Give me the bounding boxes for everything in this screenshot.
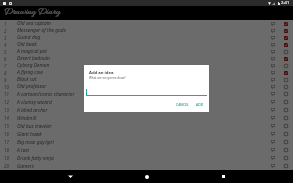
button[interactable]: 1 [0, 20, 293, 27]
staticText: 15 [4, 123, 9, 129]
button[interactable]: 14 [0, 114, 293, 122]
button[interactable]: Add a note [269, 122, 277, 130]
staticText: Big nose guy/girl [17, 139, 54, 146]
button[interactable]: Add a note [269, 114, 277, 122]
button[interactable]: 19 [0, 154, 293, 162]
button[interactable]: 16 [0, 130, 293, 138]
button[interactable]: 17 [0, 138, 293, 146]
staticText: A flying cow [17, 69, 43, 76]
button[interactable]: Add a note [269, 83, 277, 90]
staticText: 17 [4, 139, 9, 145]
button[interactable]: Add a note [269, 146, 277, 154]
staticText: 8 [4, 70, 7, 76]
button[interactable]: Mark as drawn [282, 90, 290, 98]
button[interactable]: Add a note [269, 106, 277, 114]
staticText: Windmill [17, 115, 37, 122]
staticText: A clumsy wizard [17, 99, 52, 106]
button[interactable]: 9 [0, 76, 293, 83]
button[interactable]: Recent apps [217, 170, 230, 183]
button[interactable]: Add a note [269, 34, 277, 41]
button[interactable]: Add a note [269, 62, 277, 69]
button[interactable]: Mark as drawn [282, 130, 290, 138]
button[interactable]: 7 [0, 62, 293, 69]
staticText: 16 [4, 131, 9, 137]
button[interactable]: 20 [0, 162, 293, 170]
staticText: Messenger of the gods [17, 27, 66, 34]
staticText: 18 [4, 147, 9, 153]
button[interactable]: Mark as drawn [282, 76, 290, 83]
staticText: 11 [4, 91, 9, 97]
staticText: Gamers [17, 163, 34, 170]
button[interactable]: Add a note [269, 130, 277, 138]
staticText: Old sea captain [17, 20, 51, 27]
button[interactable]: CANCEL [175, 100, 190, 109]
button[interactable]: Mark as drawn [282, 114, 290, 122]
staticText: Black cat [17, 76, 37, 83]
button[interactable]: Mark as drawn [282, 34, 290, 41]
button[interactable]: 15 [0, 122, 293, 130]
button[interactable]: ADD [195, 100, 205, 109]
button[interactable]: Mark as drawn [282, 55, 290, 62]
button[interactable]: Back [64, 170, 77, 183]
button[interactable]: Mark as drawn [282, 83, 290, 90]
staticText: A cartoon/comic character [17, 91, 75, 98]
button[interactable]: Home [140, 170, 153, 183]
button[interactable]: 5 [0, 48, 293, 55]
button[interactable]: Add a note [269, 90, 277, 98]
button[interactable]: Add a note [269, 41, 277, 48]
button[interactable]: Mark as drawn [282, 122, 290, 130]
button[interactable]: 8 [0, 69, 293, 76]
button[interactable]: Add a note [269, 76, 277, 83]
button[interactable]: Mark as drawn [282, 62, 290, 69]
button[interactable]: Mark as drawn [282, 138, 290, 146]
staticText: Drawing Diary [4, 6, 61, 17]
button[interactable]: Add a note [269, 69, 277, 76]
staticText: Old book [17, 41, 37, 48]
button[interactable]: 13 [0, 106, 293, 114]
staticText: 2 [4, 28, 7, 34]
button[interactable]: Add a note [269, 48, 277, 55]
button[interactable]: Add a note [269, 162, 277, 170]
button[interactable]: 4 [0, 41, 293, 48]
button[interactable]: Mark as drawn [282, 154, 290, 162]
staticText: A magical pot [17, 48, 47, 55]
button[interactable]: 3 [0, 34, 293, 41]
button[interactable]: Add a note [269, 154, 277, 162]
button[interactable]: Mark as drawn [282, 98, 290, 106]
staticText: 4 [4, 42, 7, 48]
staticText: 1 [4, 21, 7, 27]
staticText: Desert bedouin [17, 55, 50, 62]
button[interactable]: Mark as drawn [282, 20, 290, 27]
button[interactable]: Add a note [269, 138, 277, 146]
staticText: Guard dog [17, 34, 41, 41]
button[interactable]: Mark as drawn [282, 27, 290, 34]
button[interactable]: Mark as drawn [282, 106, 290, 114]
staticText: 13 [4, 107, 9, 113]
staticText: A taxi [17, 147, 30, 154]
staticText: 6 [4, 56, 7, 62]
staticText: Old bus traveler [17, 123, 52, 130]
staticText: 14 [4, 115, 9, 121]
button[interactable]: 18 [0, 146, 293, 154]
button[interactable]: Mark as drawn [282, 41, 290, 48]
staticText: What are we gonna draw? [89, 76, 126, 80]
staticText: 9 [4, 77, 7, 83]
staticText: 5 [4, 49, 7, 55]
button[interactable]: 12 [0, 98, 293, 106]
button[interactable]: Mark as drawn [282, 69, 290, 76]
staticText: Cyborg Demon [17, 62, 50, 69]
button[interactable]: 11 [0, 90, 293, 98]
staticText: 2:41 [281, 0, 290, 6]
button[interactable]: 2 [0, 27, 293, 34]
button[interactable]: Mark as drawn [282, 48, 290, 55]
button[interactable]: Add a note [269, 98, 277, 106]
button[interactable]: 10 [0, 83, 293, 90]
button[interactable]: Mark as drawn [282, 162, 290, 170]
staticText: A blind archer [17, 107, 48, 114]
staticText: 7 [4, 63, 7, 69]
button[interactable]: 6 [0, 55, 293, 62]
button[interactable]: Add a note [269, 55, 277, 62]
button[interactable]: Add a note [269, 27, 277, 34]
button[interactable]: Mark as drawn [282, 146, 290, 154]
button[interactable]: Add a note [269, 20, 277, 27]
